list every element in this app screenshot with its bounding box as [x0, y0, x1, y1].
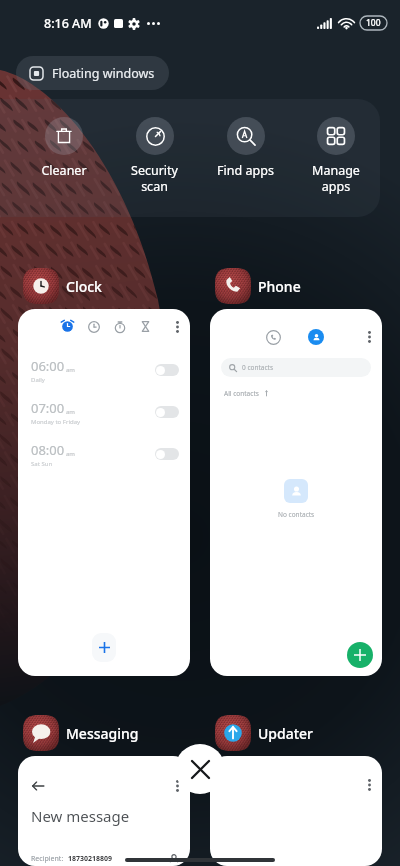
staticText: No contacts — [278, 510, 315, 519]
button[interactable]: 06:00 — [18, 309, 190, 676]
button[interactable]: Manage apps — [291, 117, 380, 195]
staticText: Floating windows — [52, 65, 155, 82]
button[interactable]: Toggle alarm — [155, 364, 179, 376]
button[interactable]: Add alarm — [92, 633, 116, 662]
staticText: Phone — [258, 277, 301, 296]
staticText: Security scan — [131, 162, 178, 195]
staticText: Manage apps — [312, 162, 360, 195]
staticText: Updater — [258, 724, 314, 743]
button[interactable]: Security scan — [109, 117, 200, 195]
staticText: 08:00 — [31, 441, 65, 459]
staticText: am — [66, 450, 75, 458]
staticText: Monday to Friday — [31, 418, 81, 426]
staticText: Clock — [66, 277, 102, 296]
staticText: Cleaner — [41, 162, 87, 179]
staticText: Sat Sun — [31, 460, 53, 468]
button[interactable]: Close all — [175, 744, 225, 794]
staticText: Messaging — [66, 724, 139, 743]
staticText: Daily — [31, 376, 45, 384]
button[interactable]: Toggle alarm — [155, 406, 179, 418]
staticText: Recipient: — [31, 854, 64, 864]
staticText: 06:00 — [31, 357, 65, 375]
button[interactable]: Add contact — [347, 642, 373, 668]
staticText: 18730218809 — [68, 854, 113, 864]
button[interactable] — [210, 756, 382, 866]
button[interactable]: Toggle alarm — [155, 448, 179, 460]
staticText: am — [66, 366, 75, 374]
button[interactable]: 0 contacts — [210, 309, 382, 676]
staticText: am — [66, 408, 75, 416]
button[interactable]: New message — [18, 756, 190, 866]
button[interactable]: Find apps — [200, 117, 291, 179]
staticText: 0 contacts — [242, 363, 274, 372]
staticText: 07:00 — [31, 399, 65, 417]
staticText: New message — [31, 806, 130, 826]
staticText: 100 — [366, 17, 381, 29]
button[interactable]: Floating windows — [16, 56, 169, 90]
staticText: 8:16 AM — [44, 15, 92, 32]
button[interactable]: Cleaner — [18, 117, 109, 179]
staticText: All contacts — [224, 389, 259, 398]
staticText: Find apps — [217, 162, 274, 179]
